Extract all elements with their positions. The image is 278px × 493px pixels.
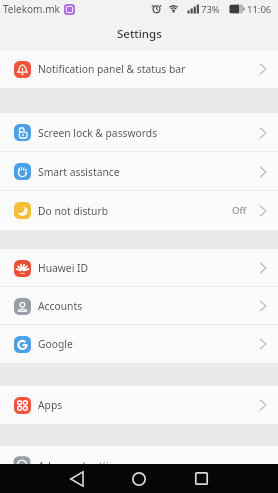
staticText: 73%: [201, 3, 220, 16]
staticText: 11:06: [247, 3, 272, 16]
button[interactable]: [46, 464, 108, 493]
button[interactable]: Google: [0, 325, 278, 363]
button[interactable]: Huawei ID: [0, 249, 278, 287]
button[interactable]: [108, 464, 170, 493]
button[interactable]: Screen lock & passwords: [0, 113, 278, 152]
button[interactable]: Apps: [0, 386, 278, 424]
staticText: Huawei ID: [38, 261, 89, 275]
staticText: Apps: [38, 398, 63, 412]
staticText: Off: [232, 204, 246, 217]
button[interactable]: Smart assistance: [0, 152, 278, 191]
button[interactable]: Accounts: [0, 287, 278, 325]
staticText: Advanced settings: [38, 459, 127, 464]
button[interactable]: Notification panel & status bar: [0, 50, 278, 88]
button[interactable]: [170, 464, 232, 493]
staticText: Do not disturb: [38, 204, 108, 218]
staticText: Settings: [117, 26, 162, 42]
button[interactable]: Advanced settings: [0, 446, 278, 464]
staticText: Telekom.mk: [3, 2, 60, 16]
button[interactable]: Do not disturb: [0, 191, 278, 230]
staticText: Accounts: [38, 299, 83, 313]
staticText: Smart assistance: [38, 165, 120, 179]
staticText: Notification panel & status bar: [38, 62, 186, 76]
staticText: Google: [38, 337, 73, 351]
staticText: Screen lock & passwords: [38, 126, 158, 140]
